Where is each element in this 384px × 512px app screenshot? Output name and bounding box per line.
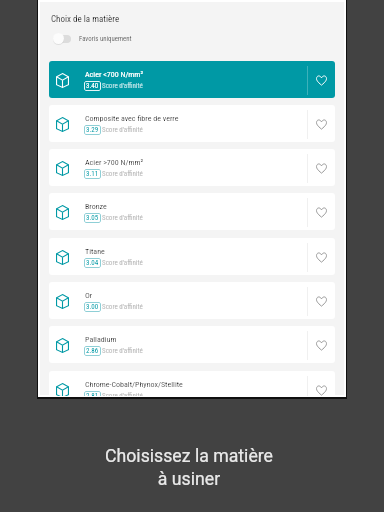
button[interactable]: Acier <700 N/mm² xyxy=(49,61,335,98)
staticText: Score d'affinité xyxy=(102,170,143,178)
button[interactable]: Titane xyxy=(49,238,335,275)
staticText: Or xyxy=(85,291,93,300)
staticText: 3.04 xyxy=(86,259,99,267)
staticText: Composite avec fibre de verre xyxy=(85,114,179,123)
staticText: Favoris uniquement xyxy=(79,35,132,43)
staticText: Choisissez la matière à usiner xyxy=(0,446,381,490)
staticText: Choix de la matière xyxy=(51,14,120,25)
button[interactable]: Favori xyxy=(307,372,335,396)
button[interactable]: Palladium xyxy=(49,326,335,363)
button[interactable]: Favori xyxy=(307,283,335,319)
button[interactable]: Composite avec fibre de verre xyxy=(49,105,335,142)
button[interactable]: Bronze xyxy=(49,193,335,230)
staticText: 3.11 xyxy=(86,170,99,178)
staticText: 3.00 xyxy=(86,303,99,311)
button[interactable]: Or xyxy=(49,282,335,319)
staticText: Score d'affinité xyxy=(102,259,143,267)
staticText: Bronze xyxy=(85,202,107,211)
staticText: Titane xyxy=(85,247,105,256)
staticText: Score d'affinité xyxy=(102,303,143,311)
staticText: 3.05 xyxy=(86,214,99,222)
button[interactable]: Chrome-Cobalt/Phynox/Stellite xyxy=(49,371,335,396)
button[interactable]: Favori xyxy=(307,62,335,98)
staticText: Score d'affinité xyxy=(102,126,143,134)
staticText: Palladium xyxy=(85,335,117,344)
staticText: 2.81 xyxy=(86,392,99,396)
button[interactable]: Favori xyxy=(307,106,335,142)
staticText: Score d'affinité xyxy=(102,214,143,222)
button[interactable]: Favoris uniquement xyxy=(53,31,132,45)
staticText: Chrome-Cobalt/Phynox/Stellite xyxy=(85,380,183,389)
staticText: Acier >700 N/mm² xyxy=(85,158,144,167)
staticText: Score d'affinité xyxy=(102,347,143,355)
button[interactable]: Acier >700 N/mm² xyxy=(49,149,335,186)
staticText: 3.29 xyxy=(86,126,99,134)
staticText: Score d'affinité xyxy=(102,82,143,90)
staticText: Score d'affinité xyxy=(102,392,143,396)
button[interactable]: Favori xyxy=(307,194,335,230)
staticText: Acier <700 N/mm² xyxy=(85,70,144,79)
button[interactable]: Favori xyxy=(307,239,335,275)
staticText: 3.40 xyxy=(86,82,99,90)
button[interactable]: Favori xyxy=(307,327,335,363)
button[interactable]: Favori xyxy=(307,150,335,186)
staticText: 2.86 xyxy=(86,347,99,355)
